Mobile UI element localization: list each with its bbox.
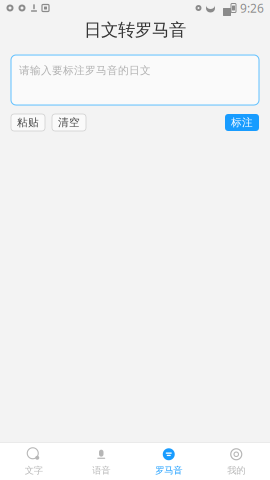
staticText: 罗马音: [155, 465, 182, 476]
button[interactable]: 请输入要标注罗马音的日文: [11, 55, 259, 105]
button[interactable]: 文字: [0, 443, 67, 480]
button[interactable]: 语音: [67, 443, 135, 480]
staticText: 标注: [231, 116, 253, 129]
button[interactable]: 我的: [202, 443, 270, 480]
staticText: 9:26: [240, 0, 264, 16]
button[interactable]: 粘贴: [11, 114, 45, 131]
staticText: 我的: [227, 465, 245, 476]
button[interactable]: 罗马音: [135, 443, 202, 480]
staticText: 文字: [25, 465, 43, 476]
button[interactable]: 清空: [52, 114, 86, 131]
staticText: 清空: [58, 116, 80, 129]
staticText: 语音: [92, 465, 110, 476]
button[interactable]: 标注: [225, 114, 259, 131]
staticText: 粘贴: [17, 116, 39, 129]
staticText: 请输入要标注罗马音的日文: [19, 64, 151, 77]
staticText: 日文转罗马音: [84, 19, 186, 41]
